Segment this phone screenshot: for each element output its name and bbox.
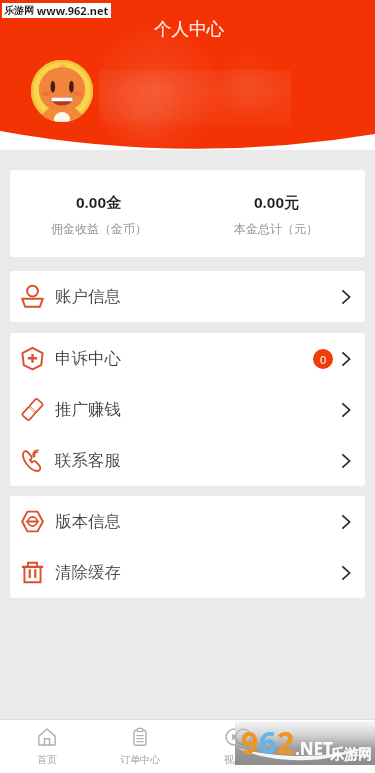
staticText: 首页 <box>37 753 57 766</box>
button[interactable]: 联系客服 <box>10 435 365 486</box>
staticText: www.962.net <box>34 3 109 18</box>
staticText: 佣金收益（金币） <box>51 221 147 236</box>
staticText: 联系客服 <box>55 450 121 471</box>
staticText: 版本信息 <box>55 511 121 532</box>
staticText: 视频 <box>224 753 244 766</box>
button[interactable]: 视频 <box>187 720 281 773</box>
staticText: .NET <box>295 737 333 760</box>
staticText: 0 <box>320 352 327 367</box>
staticText: 9 <box>241 722 259 763</box>
staticText: 0.00金 <box>76 192 121 212</box>
staticText: 0.00元 <box>254 192 299 212</box>
staticText: 乐游网 <box>4 4 34 17</box>
staticText: 个人中心 <box>154 18 224 40</box>
staticText: 推广赚钱 <box>55 399 121 420</box>
staticText: 乐游网 <box>330 746 372 764</box>
staticText: 订单中心 <box>120 753 160 766</box>
button[interactable]: 版本信息 <box>10 496 365 547</box>
button[interactable]: 清除缓存 <box>10 547 365 598</box>
button[interactable]: 申诉中心 <box>10 333 365 384</box>
staticText: 账户信息 <box>55 286 121 307</box>
button[interactable]: 我的 <box>281 720 375 773</box>
button[interactable]: 账户信息 <box>10 271 365 322</box>
button[interactable]: 订单中心 <box>93 720 187 773</box>
staticText: 清除缓存 <box>55 562 121 583</box>
staticText: 6 <box>259 722 277 763</box>
button[interactable]: 首页 <box>0 720 93 773</box>
staticText: 申诉中心 <box>55 348 121 369</box>
staticText: 我的 <box>318 753 338 766</box>
button[interactable]: 推广赚钱 <box>10 384 365 435</box>
staticText: 2 <box>277 722 295 763</box>
staticText: 本金总计（元） <box>234 221 318 236</box>
